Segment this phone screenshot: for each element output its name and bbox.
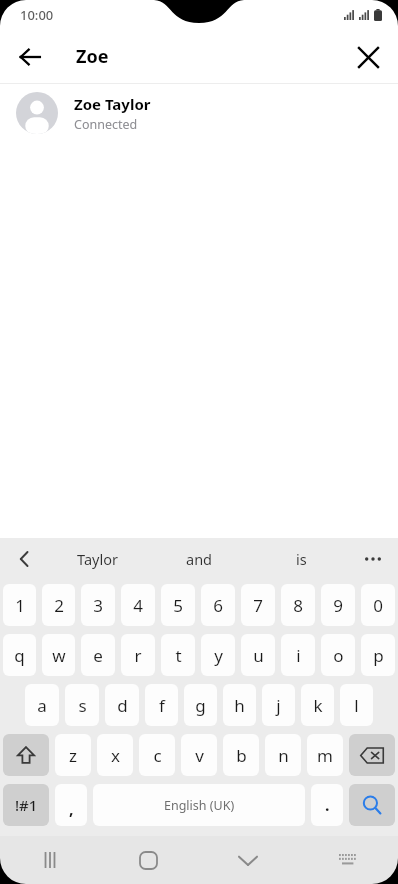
button[interactable]: Backspace <box>349 734 395 776</box>
staticText: o <box>333 644 344 667</box>
button[interactable]: and <box>148 538 250 580</box>
button[interactable]: , <box>55 784 87 826</box>
button[interactable]: Change keyboard <box>298 836 398 884</box>
button[interactable]: 5 <box>161 584 195 626</box>
button[interactable]: b <box>223 734 259 776</box>
button[interactable]: g <box>184 684 217 726</box>
staticText: 8 <box>293 594 303 617</box>
button[interactable]: o <box>321 634 355 676</box>
staticText: 3 <box>93 594 103 617</box>
staticText: q <box>14 644 25 667</box>
button[interactable]: More options <box>356 542 390 576</box>
staticText: is <box>296 549 307 569</box>
staticText: 1 <box>15 594 25 617</box>
button[interactable]: 6 <box>201 584 235 626</box>
button[interactable]: h <box>223 684 256 726</box>
staticText: Connected <box>74 116 138 133</box>
staticText: 10:00 <box>20 6 54 24</box>
staticText: !#1 <box>15 795 38 815</box>
staticText: x <box>111 744 120 767</box>
button[interactable]: 3 <box>81 584 115 626</box>
button[interactable]: r <box>121 634 155 676</box>
staticText: h <box>234 694 245 717</box>
button[interactable]: j <box>262 684 295 726</box>
button[interactable]: 8 <box>281 584 315 626</box>
button[interactable]: m <box>307 734 343 776</box>
button[interactable]: Zoe Taylor <box>0 84 398 142</box>
button[interactable]: 2 <box>42 584 75 626</box>
button[interactable]: n <box>265 734 301 776</box>
button[interactable]: 0 <box>361 584 395 626</box>
button[interactable]: Search <box>349 784 395 826</box>
button[interactable]: Hide keyboard <box>198 836 298 884</box>
staticText: k <box>313 694 323 717</box>
staticText: g <box>195 694 206 717</box>
button[interactable]: 7 <box>241 584 275 626</box>
staticText: English (UK) <box>164 797 235 814</box>
staticText: v <box>195 744 204 767</box>
button[interactable]: Home <box>99 836 198 884</box>
staticText: Taylor <box>77 549 118 569</box>
staticText: u <box>253 644 264 667</box>
staticText: Zoe <box>76 44 109 69</box>
staticText: 9 <box>333 594 343 617</box>
staticText: . <box>325 794 330 816</box>
staticText: n <box>278 744 289 767</box>
staticText: t <box>175 644 182 667</box>
staticText: s <box>78 694 87 717</box>
button[interactable]: is <box>250 538 352 580</box>
staticText: p <box>373 644 384 667</box>
staticText: r <box>134 644 142 667</box>
button[interactable]: 9 <box>321 584 355 626</box>
button[interactable]: f <box>145 684 178 726</box>
staticText: 4 <box>133 594 143 617</box>
button[interactable]: l <box>340 684 373 726</box>
staticText: m <box>317 744 333 767</box>
button[interactable]: . <box>311 784 343 826</box>
button[interactable]: Back <box>8 35 52 79</box>
button[interactable]: i <box>281 634 315 676</box>
staticText: 6 <box>213 594 223 617</box>
staticText: y <box>214 644 223 667</box>
staticText: d <box>117 694 128 717</box>
staticText: and <box>186 549 213 569</box>
button[interactable]: Recents <box>0 836 99 884</box>
button[interactable]: 4 <box>121 584 155 626</box>
button[interactable]: a <box>25 684 59 726</box>
staticText: j <box>276 694 281 717</box>
button[interactable]: !#1 <box>3 784 49 826</box>
staticText: , <box>69 798 74 820</box>
button[interactable]: d <box>105 684 139 726</box>
button[interactable]: x <box>97 734 133 776</box>
staticText: b <box>236 744 247 767</box>
button[interactable]: v <box>181 734 217 776</box>
staticText: e <box>93 644 103 667</box>
button[interactable]: w <box>42 634 75 676</box>
staticText: z <box>69 744 77 767</box>
button[interactable]: z <box>55 734 91 776</box>
staticText: c <box>153 744 162 767</box>
button[interactable]: t <box>161 634 195 676</box>
staticText: a <box>37 694 47 717</box>
button[interactable]: s <box>65 684 99 726</box>
button[interactable]: k <box>301 684 334 726</box>
button[interactable]: Close <box>346 35 390 79</box>
staticText: f <box>159 694 165 717</box>
staticText: i <box>296 644 301 667</box>
button[interactable]: Shift <box>3 734 49 776</box>
button[interactable]: u <box>241 634 275 676</box>
button[interactable]: 1 <box>3 584 36 626</box>
staticText: w <box>52 644 66 667</box>
staticText: Zoe Taylor <box>74 94 151 114</box>
staticText: 2 <box>54 594 64 617</box>
button[interactable]: p <box>361 634 395 676</box>
button[interactable]: Taylor <box>46 538 148 580</box>
staticText: l <box>354 694 359 717</box>
button[interactable]: c <box>139 734 175 776</box>
button[interactable]: e <box>81 634 115 676</box>
staticText: 0 <box>373 594 383 617</box>
button[interactable]: y <box>201 634 235 676</box>
button[interactable]: q <box>3 634 36 676</box>
button[interactable]: Previous suggestions <box>8 542 42 576</box>
button[interactable]: English (UK) <box>93 784 305 826</box>
